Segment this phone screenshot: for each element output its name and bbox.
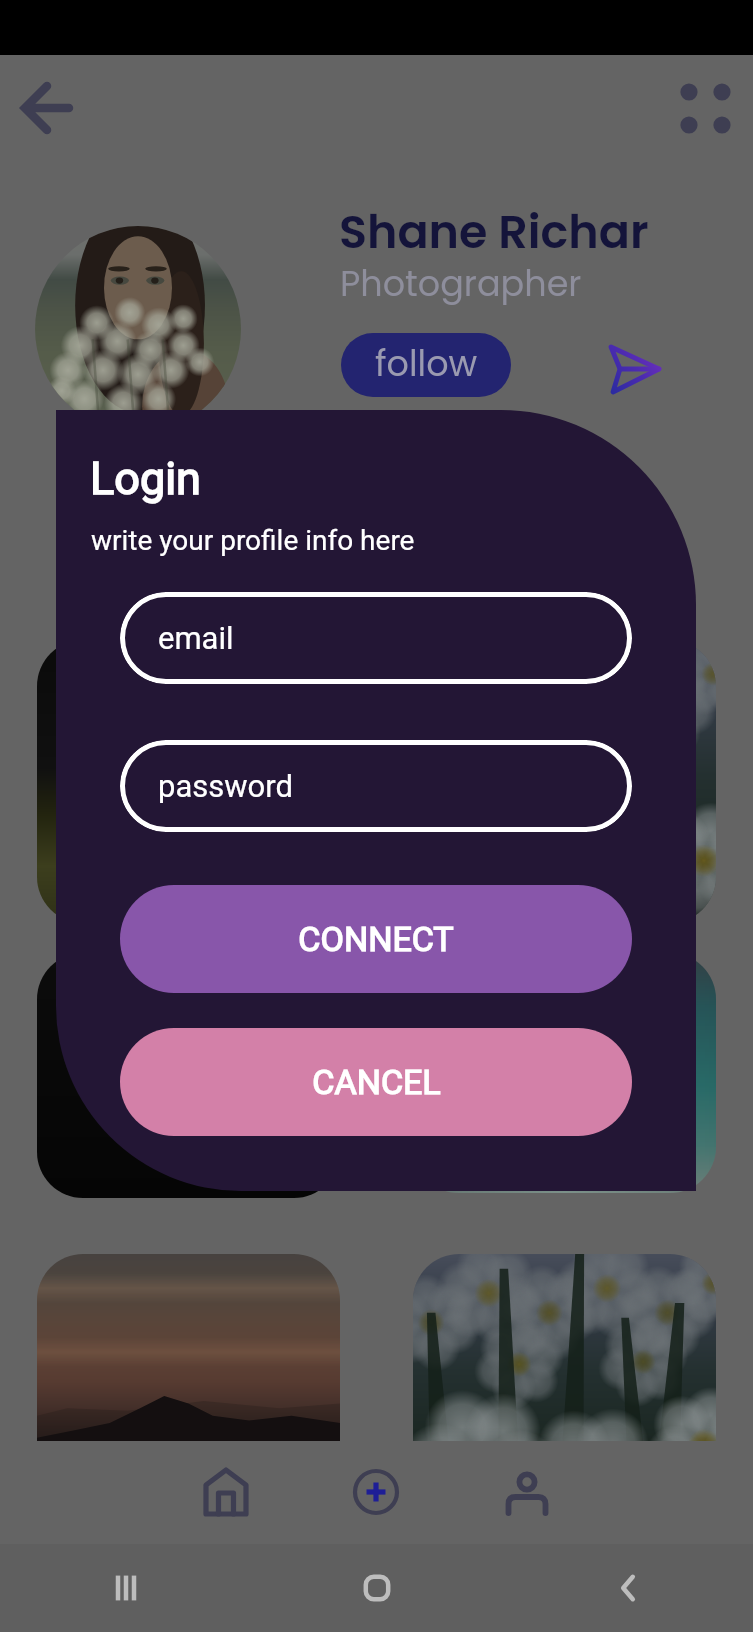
- button[interactable]: Photo: [413, 640, 716, 923]
- staticText: email: [158, 620, 234, 656]
- button[interactable]: Profile: [487, 1452, 567, 1532]
- staticText: follow: [375, 339, 478, 388]
- staticText: CONNECT: [298, 919, 454, 959]
- button[interactable]: Send message: [605, 340, 663, 398]
- button[interactable]: Add post: [336, 1452, 416, 1532]
- button[interactable]: follow: [341, 333, 511, 397]
- staticText: password: [158, 768, 293, 804]
- button[interactable]: CANCEL: [120, 1028, 632, 1136]
- button[interactable]: More options: [669, 72, 742, 145]
- staticText: Shane Richar: [339, 200, 649, 264]
- button[interactable]: Back: [502, 1544, 753, 1632]
- button[interactable]: password: [120, 740, 632, 832]
- button[interactable]: Home: [251, 1544, 502, 1632]
- staticText: Login: [90, 452, 201, 505]
- button[interactable]: Photo: [37, 953, 340, 1198]
- button[interactable]: CONNECT: [120, 885, 632, 993]
- button[interactable]: Photo: [37, 1254, 340, 1499]
- staticText: write your profile info here: [91, 524, 415, 557]
- staticText: CANCEL: [312, 1062, 441, 1102]
- button[interactable]: Photo: [37, 640, 340, 923]
- staticText: Photographer: [340, 259, 582, 308]
- button[interactable]: Home: [186, 1452, 266, 1532]
- button[interactable]: Back: [12, 72, 84, 144]
- button[interactable]: Photo: [413, 953, 716, 1193]
- button[interactable]: Photo: [413, 1254, 716, 1499]
- button[interactable]: Recents: [0, 1544, 251, 1632]
- button[interactable]: email: [120, 592, 632, 684]
